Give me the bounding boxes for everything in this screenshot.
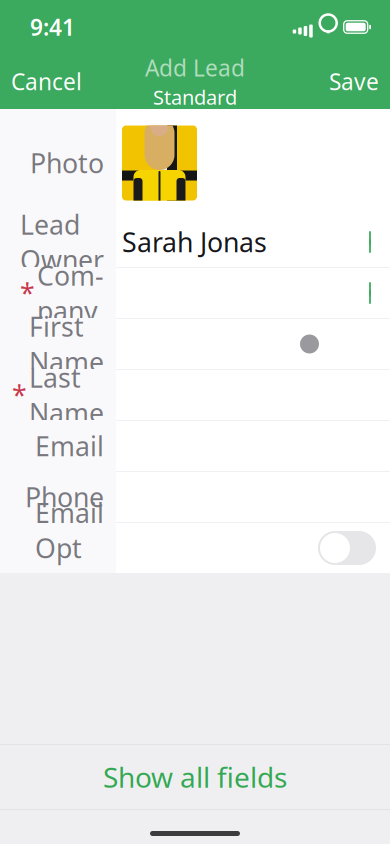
button[interactable]: Cancel: [0, 57, 93, 105]
staticText: Sarah Jonas: [122, 224, 267, 260]
staticText: Email Opt Out: [35, 495, 104, 601]
staticText: Photo: [30, 145, 104, 181]
staticText: Lead Owner: [20, 207, 104, 277]
button[interactable]: Email: [0, 421, 390, 471]
button[interactable]: Save: [318, 57, 390, 105]
staticText: *: [12, 377, 27, 413]
staticText: Add Lead: [145, 53, 245, 83]
button[interactable]: Lead photo: [122, 125, 197, 200]
staticText: Last Name: [29, 360, 104, 430]
staticText: *: [20, 275, 35, 311]
staticText: 9:41: [30, 12, 75, 42]
button[interactable]: *: [0, 370, 390, 420]
staticText: Company: [37, 258, 104, 328]
button[interactable]: Email Opt Out: [0, 523, 390, 573]
button[interactable]: *: [0, 268, 390, 318]
staticText: Phone: [25, 479, 104, 515]
staticText: Save: [329, 66, 379, 96]
staticText: First Name: [29, 309, 104, 379]
button[interactable]: Lead Owner: [0, 217, 390, 267]
button[interactable]: Show all fields: [0, 745, 390, 809]
staticText: Standard: [153, 84, 237, 110]
button[interactable]: Phone: [0, 472, 390, 522]
button[interactable]: First Name: [0, 319, 390, 369]
staticText: Cancel: [11, 66, 82, 96]
staticText: Email: [35, 428, 104, 464]
staticText: Show all fields: [103, 758, 287, 796]
